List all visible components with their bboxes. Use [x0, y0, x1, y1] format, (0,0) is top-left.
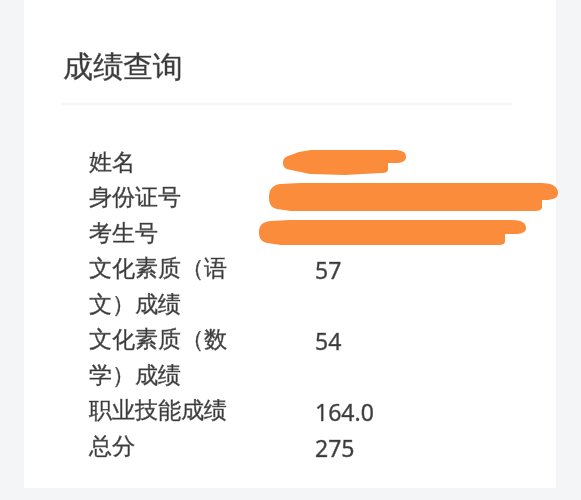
- staticText: 54: [315, 325, 342, 356]
- button[interactable]: 身份证号: [89, 183, 489, 212]
- button[interactable]: 文化素质（语: [89, 254, 489, 285]
- staticText: 文化素质（语: [89, 254, 227, 283]
- button[interactable]: 总分: [89, 432, 489, 463]
- staticText: 文化素质（数: [89, 325, 227, 354]
- staticText: 总分: [89, 432, 135, 461]
- staticText: 275: [315, 432, 355, 463]
- staticText: 164.0: [315, 396, 374, 427]
- button[interactable]: 考生号: [89, 219, 489, 248]
- button[interactable]: 文化素质（数: [89, 325, 489, 356]
- button[interactable]: 学）成绩: [89, 361, 489, 390]
- staticText: 成绩查询: [63, 48, 183, 86]
- staticText: 57: [315, 254, 342, 285]
- staticText: 身份证号: [89, 183, 181, 212]
- staticText: 职业技能成绩: [89, 396, 227, 425]
- staticText: 姓名: [89, 148, 135, 177]
- button[interactable]: 职业技能成绩: [89, 396, 489, 427]
- staticText: 学）成绩: [89, 361, 181, 390]
- staticText: 文）成绩: [89, 290, 181, 319]
- staticText: 考生号: [89, 219, 158, 248]
- button[interactable]: 成绩查询: [63, 48, 183, 86]
- button[interactable]: 姓名: [89, 148, 489, 177]
- button[interactable]: 文）成绩: [89, 290, 489, 319]
